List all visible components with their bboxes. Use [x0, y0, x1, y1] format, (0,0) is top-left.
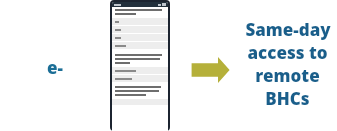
staticText: access to	[247, 41, 328, 64]
button[interactable]	[112, 42, 168, 49]
staticText: BHCs	[265, 87, 310, 110]
button[interactable]	[112, 26, 168, 33]
staticText: e-Screening	[6, 56, 104, 78]
button[interactable]	[112, 75, 168, 82]
button[interactable]	[112, 67, 168, 74]
staticText: remote	[255, 64, 320, 87]
staticText: Same-day	[245, 18, 331, 41]
button[interactable]	[112, 18, 168, 25]
button[interactable]	[112, 34, 168, 41]
button[interactable]: Same-day	[240, 18, 335, 110]
button[interactable]: Leads to	[190, 56, 230, 84]
button[interactable]: e-Screening	[6, 56, 104, 78]
